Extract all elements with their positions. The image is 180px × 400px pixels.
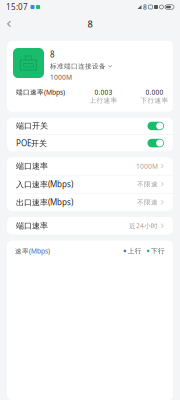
staticText: 上行 — [128, 247, 142, 255]
button[interactable]: 入口速率(Mbps) — [7, 175, 173, 193]
staticText: 不限速 — [137, 180, 158, 188]
staticText: 速率(Mbps) — [15, 246, 50, 255]
button[interactable]: POE开关 — [7, 135, 173, 151]
button[interactable]: 端口速率 — [7, 217, 173, 234]
staticText: 下行 — [151, 247, 165, 255]
staticText: 下行速率 — [140, 96, 168, 105]
staticText: 入口速率(Mbps) — [16, 179, 73, 189]
button[interactable]: 端口速率 — [7, 157, 173, 175]
staticText: 0.003 — [94, 88, 112, 97]
button[interactable]: 出口速率(Mbps) — [7, 193, 173, 211]
staticText: POE开关 — [16, 138, 47, 148]
staticText: 8 — [50, 49, 55, 60]
staticText: 出口速率(Mbps) — [16, 197, 73, 207]
staticText: 端口速率 — [16, 221, 48, 231]
staticText: 8 — [143, 3, 147, 11]
staticText: 端口速率 — [16, 161, 48, 171]
staticText: 0.000 — [145, 88, 163, 97]
staticText: 上行速率 — [89, 96, 117, 105]
staticText: 标准端口连接设备 — [50, 62, 106, 70]
staticText: 1000M — [136, 162, 158, 170]
staticText: 15:07 — [6, 2, 28, 12]
staticText: 近24小时 — [129, 221, 158, 230]
staticText: 8 — [87, 18, 92, 30]
staticText: 端口开关 — [16, 121, 48, 131]
staticText: 端口速率(Mbps) — [16, 88, 65, 97]
button[interactable]: 端口开关 — [7, 118, 173, 134]
button[interactable]: Back — [0, 14, 18, 33]
staticText: 不限速 — [137, 198, 158, 206]
staticText: 1000M — [50, 73, 72, 82]
